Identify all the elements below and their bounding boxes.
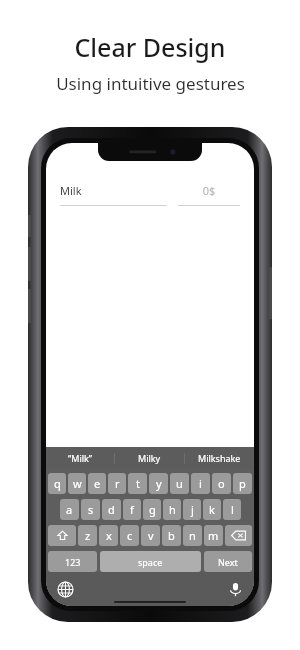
button[interactable]: l <box>223 499 241 520</box>
button[interactable]: f <box>123 499 141 520</box>
button[interactable]: b <box>162 525 181 546</box>
button[interactable]: o <box>212 473 231 494</box>
staticText: b <box>168 528 175 543</box>
button[interactable]: Backspace <box>225 525 252 546</box>
button[interactable]: t <box>128 473 147 494</box>
staticText: m <box>208 528 219 543</box>
button[interactable]: y <box>149 473 168 494</box>
staticText: j <box>191 502 194 517</box>
staticText: “Milk” <box>68 452 93 464</box>
button[interactable]: Shift <box>48 525 76 546</box>
staticText: c <box>127 528 133 543</box>
button[interactable]: Milky <box>115 447 184 469</box>
staticText: n <box>189 528 196 543</box>
button[interactable]: 0$ <box>178 183 240 206</box>
button[interactable]: Next <box>204 551 252 572</box>
staticText: y <box>156 476 162 491</box>
button[interactable]: x <box>99 525 118 546</box>
button[interactable]: k <box>203 499 221 520</box>
button[interactable]: h <box>163 499 181 520</box>
button[interactable]: Milk <box>60 183 167 206</box>
staticText: a <box>66 502 73 517</box>
button[interactable]: Milkshake <box>185 447 254 469</box>
button[interactable]: e <box>88 473 106 494</box>
button[interactable]: space <box>100 551 201 572</box>
staticText: k <box>209 502 215 517</box>
staticText: Next <box>218 556 238 568</box>
button[interactable]: c <box>120 525 139 546</box>
staticText: Using intuitive gestures <box>56 72 245 95</box>
staticText: w <box>73 476 82 491</box>
button[interactable]: j <box>183 499 201 520</box>
button[interactable]: m <box>204 525 223 546</box>
button[interactable]: Switch keyboard language <box>54 578 76 600</box>
button[interactable]: u <box>170 473 189 494</box>
button[interactable]: g <box>143 499 161 520</box>
staticText: f <box>130 502 134 517</box>
staticText: g <box>149 502 156 517</box>
button[interactable]: q <box>48 473 66 494</box>
button[interactable]: a <box>60 499 79 520</box>
staticText: e <box>94 476 101 491</box>
button[interactable]: Voice input <box>224 578 246 600</box>
staticText: Milkshake <box>198 452 241 464</box>
staticText: h <box>169 502 176 517</box>
button[interactable]: p <box>233 473 252 494</box>
staticText: t <box>136 476 140 491</box>
staticText: 0$ <box>178 183 240 198</box>
staticText: i <box>199 476 202 491</box>
staticText: 123 <box>65 556 81 568</box>
staticText: p <box>239 476 246 491</box>
button[interactable]: s <box>81 499 100 520</box>
button[interactable]: 123 <box>48 551 97 572</box>
button[interactable]: i <box>191 473 210 494</box>
button[interactable]: n <box>183 525 202 546</box>
staticText: u <box>176 476 183 491</box>
staticText: x <box>106 528 112 543</box>
button[interactable]: v <box>141 525 160 546</box>
staticText: l <box>231 502 234 517</box>
button[interactable]: z <box>78 525 97 546</box>
staticText: space <box>138 556 163 568</box>
staticText: q <box>54 476 61 491</box>
staticText: s <box>88 502 94 517</box>
staticText: z <box>85 528 91 543</box>
staticText: v <box>148 528 154 543</box>
staticText: o <box>218 476 225 491</box>
staticText: Clear Design <box>74 30 226 64</box>
button[interactable]: d <box>102 499 121 520</box>
staticText: Milky <box>138 452 161 464</box>
staticText: r <box>115 476 120 491</box>
button[interactable]: “Milk” <box>46 447 114 469</box>
staticText: d <box>108 502 115 517</box>
staticText: Milk <box>60 183 82 198</box>
button[interactable]: w <box>68 473 86 494</box>
button[interactable]: r <box>108 473 126 494</box>
